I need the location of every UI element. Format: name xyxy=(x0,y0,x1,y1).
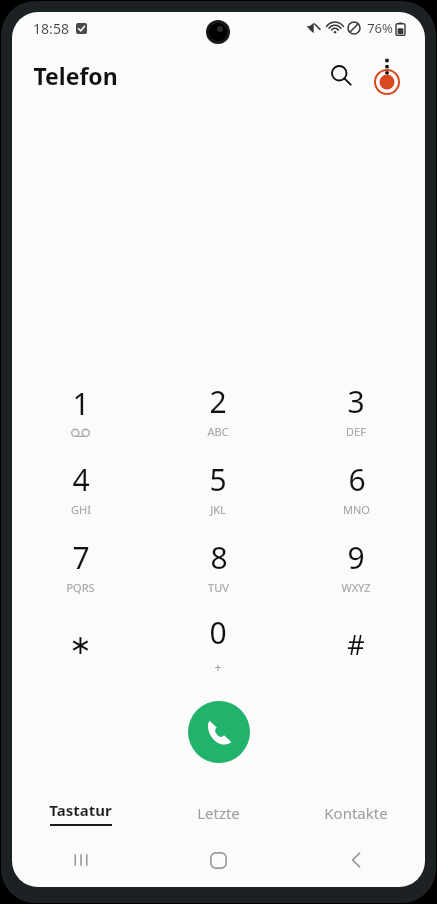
staticText: DEF xyxy=(346,424,366,439)
staticText: Kontakte xyxy=(324,803,388,823)
button[interactable]: Telefon xyxy=(33,60,118,91)
staticText: ∗ xyxy=(69,629,92,660)
button[interactable]: # xyxy=(287,605,425,683)
button[interactable]: 4 xyxy=(12,449,149,527)
staticText: 0 xyxy=(209,612,227,653)
button[interactable]: 3 xyxy=(287,371,425,449)
staticText: Telefon xyxy=(33,60,118,91)
button[interactable]: Startbildschirm xyxy=(149,843,287,877)
staticText: GHI xyxy=(71,502,91,517)
button[interactable]: ∗ xyxy=(12,605,149,683)
button[interactable]: 5 xyxy=(149,449,287,527)
staticText: ABC xyxy=(207,424,229,439)
button[interactable]: 6 xyxy=(287,449,425,527)
staticText: WXYZ xyxy=(341,580,371,595)
staticText: 4 xyxy=(72,459,90,500)
staticText: 7 xyxy=(72,537,90,578)
staticText: 8 xyxy=(210,537,228,578)
button[interactable]: Zurück xyxy=(287,843,425,877)
staticText: 1 xyxy=(72,383,90,424)
button[interactable]: Letzte Apps xyxy=(12,843,149,877)
staticText: + xyxy=(214,658,222,676)
staticText: PQRS xyxy=(66,580,95,595)
staticText: 2 xyxy=(209,381,227,422)
button[interactable]: 1 xyxy=(12,371,149,449)
button[interactable]: 8 xyxy=(149,527,287,605)
staticText: Tastatur xyxy=(49,800,112,820)
staticText: JKL xyxy=(210,502,226,517)
button[interactable]: Suchen xyxy=(319,53,363,97)
button[interactable]: Kontakte xyxy=(287,797,425,829)
button[interactable]: 2 xyxy=(149,371,287,449)
button[interactable]: 7 xyxy=(12,527,149,605)
staticText: # xyxy=(347,626,365,663)
staticText: 6 xyxy=(348,459,366,500)
staticText: MNO xyxy=(343,502,370,517)
staticText: 3 xyxy=(347,381,365,422)
button[interactable]: Letzte xyxy=(149,797,287,829)
staticText: 76% xyxy=(367,19,393,37)
staticText: TUV xyxy=(208,580,229,595)
staticText: Letzte xyxy=(197,803,240,823)
button[interactable]: 9 xyxy=(287,527,425,605)
staticText: 5 xyxy=(209,459,227,500)
button[interactable]: Tastatur xyxy=(12,797,149,829)
button[interactable]: Anrufen xyxy=(188,701,250,763)
button[interactable]: 0 xyxy=(149,605,287,683)
staticText: 18:58 xyxy=(33,19,69,38)
button[interactable]: Weitere Optionen xyxy=(365,53,409,97)
staticText: 9 xyxy=(347,537,365,578)
